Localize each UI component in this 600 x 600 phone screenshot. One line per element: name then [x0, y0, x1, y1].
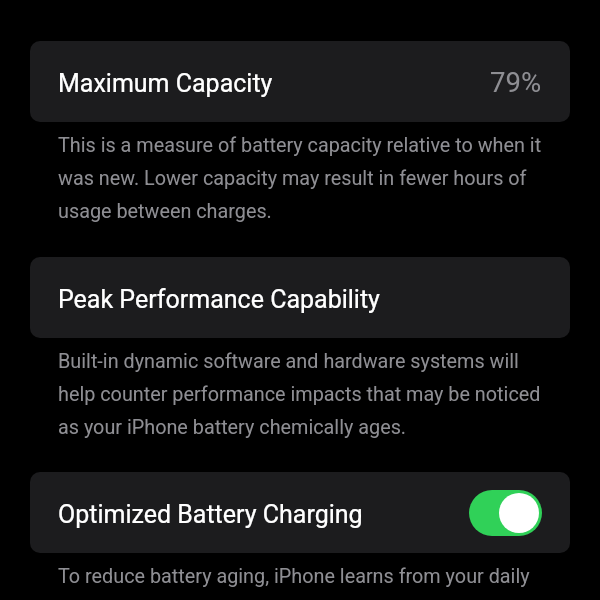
staticText: Peak Performance Capability	[58, 285, 380, 314]
staticText: This is a measure of battery capacity re…	[58, 134, 542, 223]
staticText: Optimized Battery Charging	[58, 500, 363, 529]
button[interactable]: Optimized Battery Charging	[30, 472, 570, 553]
staticText: To reduce battery aging, iPhone learns f…	[58, 565, 542, 600]
staticText: Maximum Capacity	[58, 69, 273, 98]
staticText: Built-in dynamic software and hardware s…	[58, 350, 542, 439]
button[interactable]: Maximum Capacity	[30, 41, 570, 122]
button[interactable]: Peak Performance Capability	[30, 257, 570, 338]
staticText: 79%	[490, 66, 542, 98]
button[interactable]: Optimized Battery Charging, on	[469, 490, 542, 536]
